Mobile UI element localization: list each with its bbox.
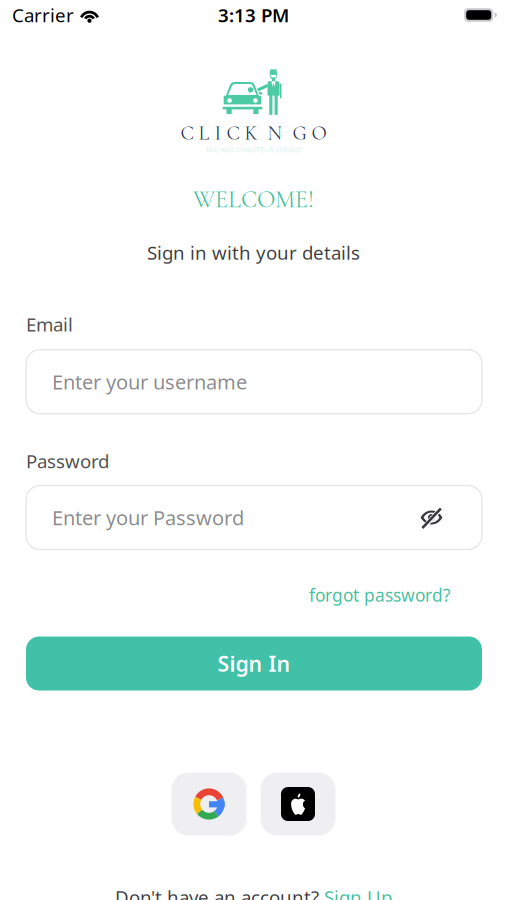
staticText: Sign In <box>217 649 290 678</box>
staticText: Enter your Password <box>52 504 244 531</box>
button[interactable]: Sign Up <box>324 884 392 900</box>
staticText: Carrier <box>12 3 74 27</box>
button[interactable]: Sign in with Google <box>171 772 246 835</box>
staticText: Enter your username <box>52 368 247 395</box>
staticText: Sign Up <box>324 884 392 900</box>
staticText: 3:13 PM <box>218 3 289 27</box>
staticText: WELCOME! <box>193 185 314 214</box>
button[interactable]: Sign In <box>26 636 482 690</box>
button[interactable]: Sign in with Apple <box>260 772 335 835</box>
staticText: Email <box>26 312 73 337</box>
staticText: Password <box>26 449 109 473</box>
button[interactable]: forgot password? <box>309 580 482 609</box>
staticText: TAXI AND CHAUFFEUR SERVICE <box>205 145 301 154</box>
staticText: Sign in with your details <box>147 240 360 265</box>
staticText: forgot password? <box>309 583 451 606</box>
staticText: Don't have an account? <box>115 884 319 900</box>
staticText: C L I C K N G O <box>180 121 326 145</box>
